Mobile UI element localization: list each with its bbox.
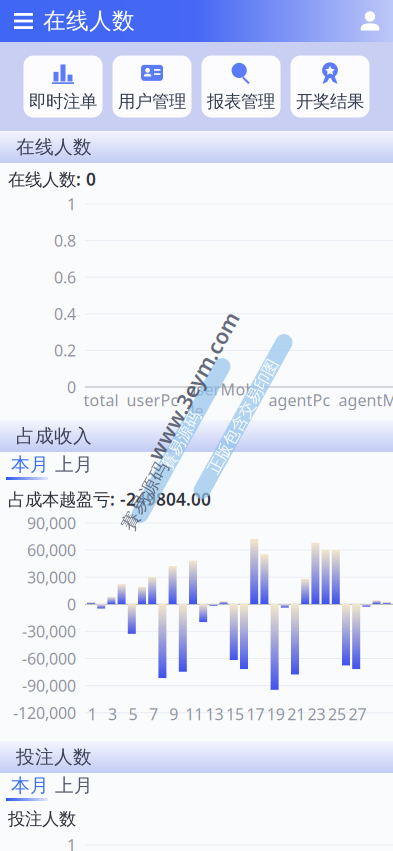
staticText: 0.8	[54, 230, 76, 251]
button[interactable]: 即时注单	[23, 55, 102, 117]
button[interactable]: Menu	[0, 0, 43, 42]
staticText: agentPc	[268, 389, 330, 411]
staticText: -30,000	[22, 621, 76, 642]
staticText: 在线人数: 0	[8, 167, 96, 190]
button[interactable]: 本月	[8, 452, 52, 477]
staticText: userPc	[126, 389, 178, 411]
staticText: 在线人数	[16, 135, 92, 158]
staticText: 本月	[11, 453, 49, 476]
staticText: 即时注单	[29, 91, 97, 112]
staticText: 25	[328, 703, 346, 725]
button[interactable]: 上月	[52, 452, 96, 477]
staticText: 賽易源码	[107, 484, 183, 507]
staticText: agentM	[338, 389, 393, 411]
staticText: -90,000	[22, 675, 76, 696]
staticText: 90,000	[27, 512, 76, 534]
staticText: www.3eym.com	[110, 372, 275, 400]
staticText: 21	[287, 703, 305, 725]
staticText: 3	[108, 703, 117, 725]
staticText: 5	[128, 703, 137, 725]
staticText: 上月	[55, 453, 93, 476]
staticText: 1	[88, 703, 97, 725]
button[interactable]: 上月	[52, 773, 96, 798]
staticText: 27	[348, 703, 366, 725]
staticText: -120,000	[13, 702, 76, 723]
staticText: userMobile	[186, 379, 260, 421]
staticText: 开奖结果	[296, 91, 364, 112]
staticText: 投注人数	[8, 808, 76, 830]
staticText: 在线人数	[43, 7, 135, 35]
staticText: 15	[226, 703, 244, 725]
staticText: 占成收入	[16, 424, 92, 447]
staticText: 17	[246, 703, 264, 725]
staticText: 报表管理	[207, 91, 275, 112]
staticText: 正版包含交易印图	[179, 407, 307, 426]
staticText: 60,000	[27, 539, 76, 561]
staticText: 19	[267, 703, 285, 725]
staticText: 13	[206, 703, 224, 725]
button[interactable]: Account	[359, 0, 393, 42]
staticText: 0.4	[54, 303, 76, 324]
staticText: 11	[185, 703, 203, 725]
staticText: 上月	[55, 774, 93, 797]
staticText: 23	[308, 703, 326, 725]
staticText: 1	[67, 193, 76, 215]
staticText: 投注人数	[16, 745, 92, 768]
staticText: 占成本越盈亏: -249804.00	[8, 487, 211, 510]
button[interactable]: 报表管理	[201, 55, 280, 117]
staticText: 0	[67, 376, 76, 398]
button[interactable]: 本月	[8, 773, 52, 798]
button[interactable]: 用户管理	[112, 55, 191, 117]
staticText: 1	[67, 834, 76, 851]
staticText: 本月	[11, 774, 49, 797]
button[interactable]: 开奖结果	[290, 55, 369, 117]
staticText: 30,000	[27, 567, 76, 588]
staticText: 0.6	[54, 267, 76, 288]
staticText: total	[83, 389, 118, 411]
staticText: 7	[149, 703, 158, 725]
staticText: 用户管理	[118, 91, 186, 112]
staticText: 0	[67, 594, 76, 615]
staticText: 賽易源码	[149, 431, 213, 450]
staticText: -60,000	[22, 648, 76, 669]
staticText: 9	[169, 703, 178, 725]
staticText: 0.2	[54, 340, 76, 361]
